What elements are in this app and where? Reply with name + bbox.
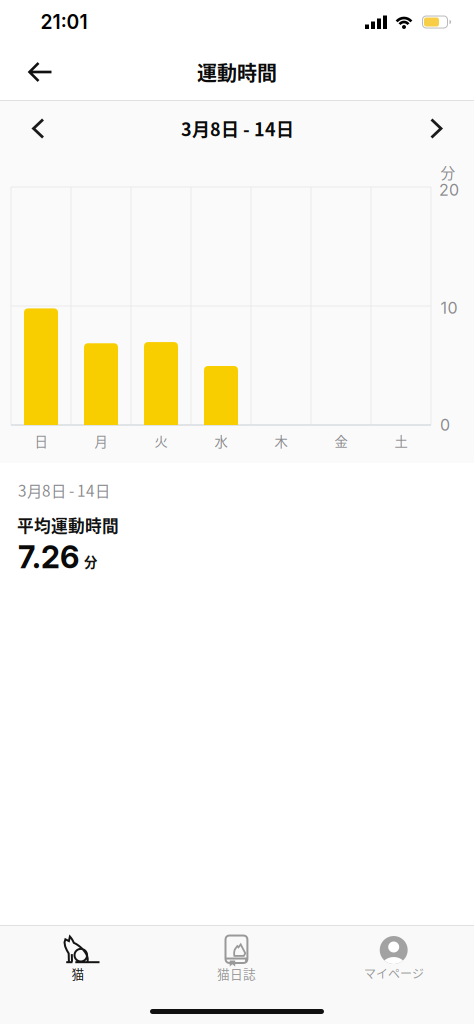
button[interactable]: [417, 106, 454, 151]
staticText: マイページ: [364, 965, 424, 982]
staticText: 21:01: [40, 10, 87, 34]
button[interactable]: [19, 106, 56, 151]
staticText: 猫: [71, 964, 84, 983]
button[interactable]: [15, 49, 64, 94]
staticText: 日: [34, 431, 47, 451]
button[interactable]: 猫: [0, 925, 158, 1003]
staticText: 土: [394, 431, 407, 451]
staticText: 水: [214, 431, 227, 451]
staticText: 金: [334, 431, 347, 451]
staticText: 火: [154, 431, 167, 451]
staticText: 猫日誌: [217, 964, 256, 983]
button[interactable]: マイページ: [316, 925, 474, 1003]
staticText: 運動時間: [197, 57, 277, 86]
staticText: 0: [440, 415, 450, 435]
staticText: 3月8日 - 14日: [181, 115, 294, 142]
staticText: 20: [439, 180, 459, 200]
staticText: 分: [84, 552, 97, 571]
staticText: 分: [440, 161, 455, 183]
staticText: 木: [274, 431, 287, 451]
staticText: 月: [94, 431, 107, 451]
button[interactable]: 猫日誌: [158, 925, 316, 1003]
staticText: 3月8日 - 14日: [18, 479, 110, 501]
staticText: 7.26: [18, 538, 79, 575]
staticText: 10: [440, 298, 457, 318]
staticText: 平均運動時間: [17, 513, 119, 537]
